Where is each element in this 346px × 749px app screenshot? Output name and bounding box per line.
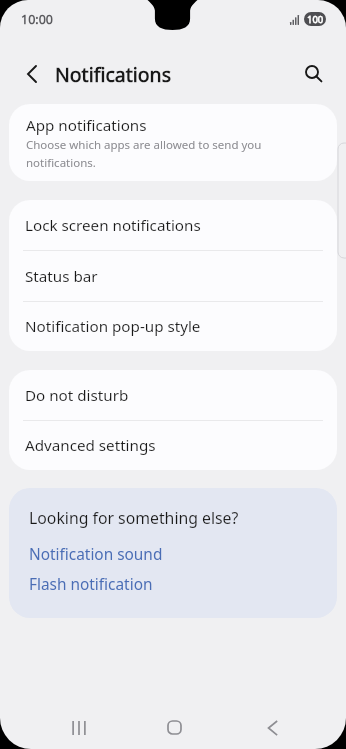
staticText: Choose which apps are allowed to send yo…: [26, 137, 318, 170]
button[interactable]: App notifications: [9, 104, 337, 181]
staticText: 10:00: [21, 11, 53, 28]
staticText: Notification pop-up style: [25, 316, 201, 337]
button[interactable]: Notification pop-up style: [9, 302, 337, 351]
staticText: Status bar: [25, 266, 98, 287]
staticText: Notifications: [55, 61, 171, 88]
staticText: App notifications: [26, 115, 147, 136]
button[interactable]: Advanced settings: [9, 421, 337, 470]
button[interactable]: Home: [150, 706, 199, 749]
button[interactable]: Lock screen notifications: [9, 200, 337, 250]
button[interactable]: Notification sound: [29, 544, 163, 565]
staticText: Lock screen notifications: [25, 215, 201, 236]
staticText: Do not disturb: [25, 385, 129, 406]
button[interactable]: Search: [294, 54, 334, 94]
button[interactable]: Status bar: [9, 251, 337, 301]
button[interactable]: Flash notification: [29, 574, 153, 595]
staticText: Advanced settings: [25, 435, 156, 456]
button[interactable]: Back: [248, 706, 297, 749]
button[interactable]: Back: [12, 54, 52, 94]
staticText: 100: [307, 13, 324, 26]
button[interactable]: Recent apps: [54, 706, 103, 749]
staticText: Looking for something else?: [29, 507, 239, 529]
button[interactable]: Do not disturb: [9, 370, 337, 420]
